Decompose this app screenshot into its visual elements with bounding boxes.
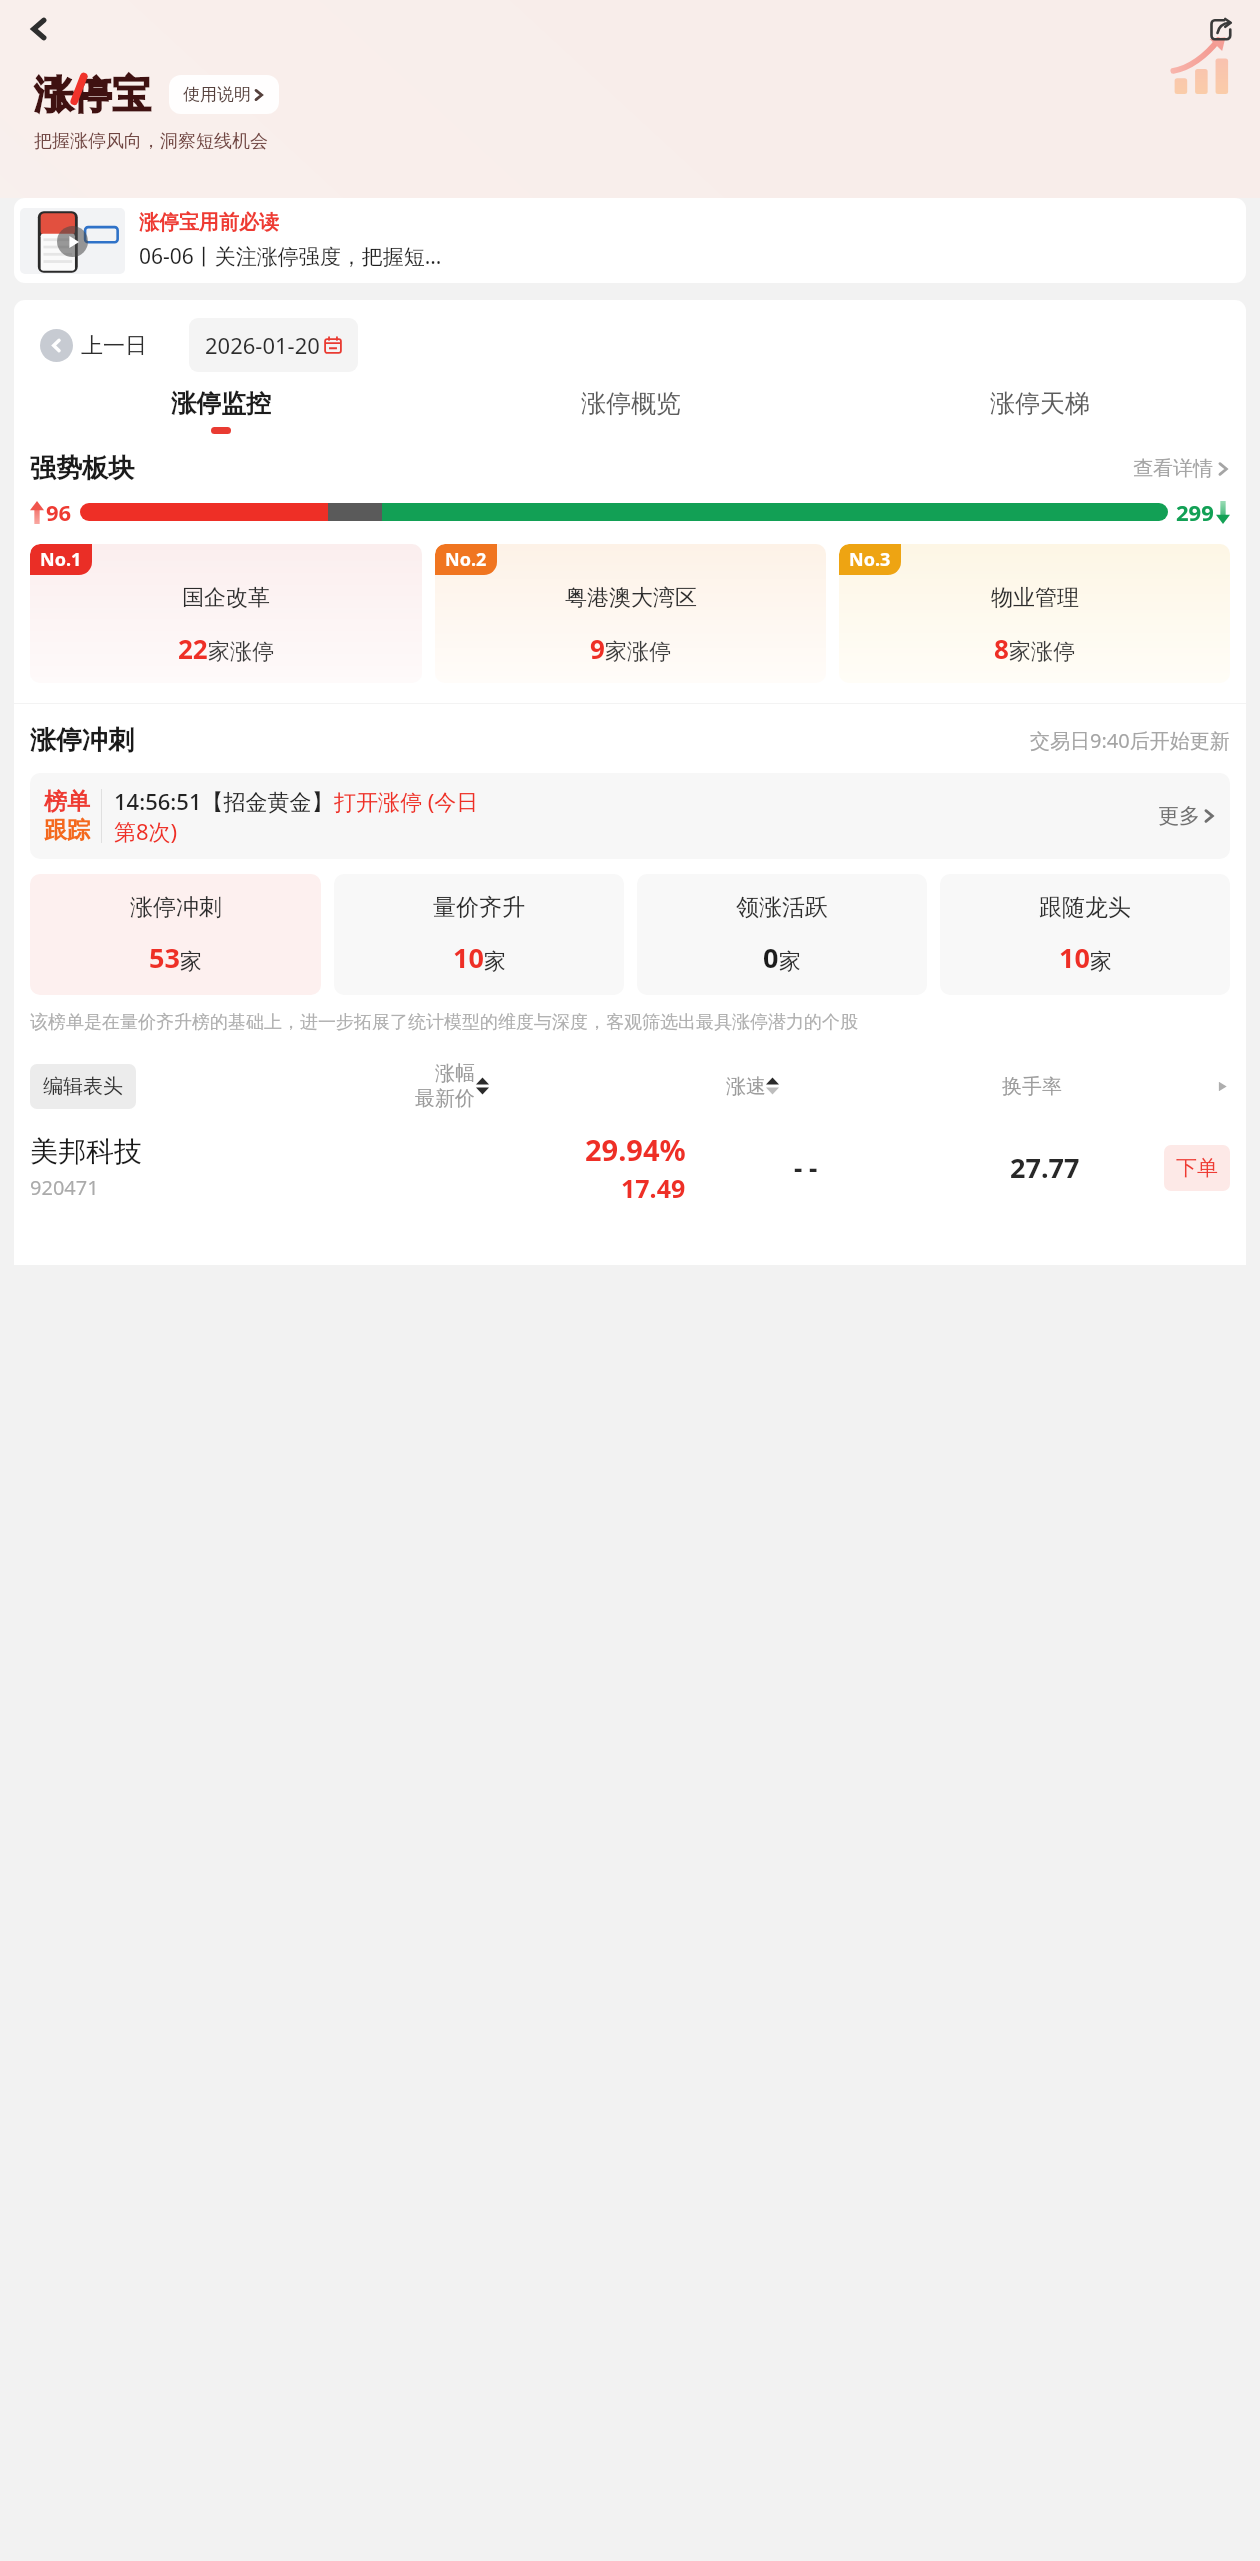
staticText: 29.94%: [585, 1130, 686, 1169]
staticText: No.1: [40, 547, 82, 572]
staticText: 该榜单是在量价齐升榜的基础上，进一步拓展了统计模型的维度与深度，客观筛选出最具涨…: [30, 1011, 858, 1034]
staticText: 96: [46, 497, 72, 527]
button[interactable]: 量价齐升: [334, 874, 624, 995]
staticText: 家涨停: [1009, 638, 1075, 666]
staticText: 涨停概览: [581, 388, 681, 419]
staticText: 0: [763, 939, 779, 976]
staticText: 编辑表头: [43, 1074, 123, 1099]
staticText: - -: [794, 1150, 818, 1185]
staticText: 9: [590, 631, 605, 666]
button[interactable]: 涨停天梯: [835, 388, 1244, 434]
button[interactable]: Back: [12, 2, 66, 56]
button[interactable]: 编辑表头: [30, 1064, 136, 1109]
button[interactable]: 美邦科技: [30, 1130, 1230, 1205]
button[interactable]: 涨停概览: [426, 388, 835, 434]
staticText: 下单: [1176, 1155, 1218, 1181]
staticText: 榜单: [44, 787, 90, 816]
staticText: 打开涨停 (今日: [334, 786, 479, 816]
staticText: 22: [178, 631, 208, 666]
button[interactable]: No.1: [30, 544, 422, 683]
staticText: 2026-01-20: [205, 330, 320, 360]
staticText: 涨停监控: [171, 388, 271, 419]
staticText: No.2: [445, 547, 487, 572]
staticText: 家涨停: [605, 638, 671, 666]
staticText: 家: [1090, 948, 1112, 976]
staticText: 物业管理: [991, 584, 1079, 612]
staticText: 06-06丨关注涨停强度，把握短…: [139, 242, 442, 271]
staticText: 粤港澳大湾区: [565, 584, 697, 612]
button[interactable]: 涨停冲刺: [30, 874, 321, 995]
button[interactable]: 领涨活跃: [637, 874, 927, 995]
button[interactable]: No.3: [839, 544, 1230, 683]
staticText: 920471: [30, 1174, 99, 1201]
staticText: 涨速: [726, 1074, 766, 1099]
button[interactable]: 跟随龙头: [940, 874, 1230, 995]
staticText: 17.49: [621, 1171, 686, 1205]
button[interactable]: 涨速: [726, 1071, 779, 1101]
staticText: 使用说明: [183, 84, 251, 105]
staticText: 家: [484, 948, 506, 976]
button[interactable]: 涨停宝用前必读: [14, 198, 1246, 283]
staticText: 10: [1059, 939, 1090, 976]
staticText: 上一日: [81, 332, 147, 360]
staticText: 强势板块: [30, 452, 134, 485]
staticText: 299: [1176, 497, 1214, 527]
staticText: 27.77: [1010, 1149, 1080, 1186]
button[interactable]: 查看详情: [1133, 456, 1230, 481]
staticText: 跟踪: [44, 816, 90, 845]
staticText: 家: [779, 948, 801, 976]
staticText: 国企改革: [182, 584, 270, 612]
button[interactable]: 交易日9:40后开始更新: [1030, 727, 1230, 754]
staticText: No.3: [849, 547, 891, 572]
staticText: 交易日9:40后开始更新: [1030, 727, 1230, 754]
staticText: 10: [453, 939, 484, 976]
button[interactable]: 榜单: [30, 773, 1230, 859]
staticText: 把握涨停风向，洞察短线机会: [34, 130, 268, 153]
staticText: 家涨停: [208, 638, 274, 666]
button[interactable]: 下单: [1164, 1145, 1230, 1191]
staticText: 跟随龙头: [1039, 893, 1131, 922]
staticText: 查看详情: [1133, 456, 1213, 481]
staticText: 14:56:51【招金黄金】: [114, 786, 334, 816]
staticText: 涨停宝用前必读: [139, 210, 279, 235]
button[interactable]: 2026-01-20: [189, 318, 358, 372]
button[interactable]: 涨停监控: [16, 388, 426, 434]
button[interactable]: No.2: [435, 544, 826, 683]
staticText: 涨停宝: [34, 70, 151, 119]
staticText: 量价齐升: [433, 893, 525, 922]
staticText: 家: [180, 948, 202, 976]
button[interactable]: Share: [1194, 2, 1248, 56]
staticText: 第8次): [114, 816, 178, 846]
staticText: 更多: [1158, 803, 1200, 829]
staticText: 涨停天梯: [990, 388, 1090, 419]
staticText: 涨停冲刺: [30, 724, 134, 757]
button[interactable]: 使用说明: [169, 75, 279, 114]
button[interactable]: 涨幅: [415, 1061, 489, 1111]
staticText: 涨幅: [435, 1061, 475, 1086]
other: More columns: [1215, 1079, 1230, 1094]
staticText: 涨停冲刺: [130, 893, 222, 922]
staticText: 最新价: [415, 1086, 475, 1111]
button[interactable]: 上一日: [40, 329, 147, 362]
staticText: 8: [994, 631, 1009, 666]
staticText: 53: [149, 939, 180, 976]
staticText: 换手率: [1002, 1074, 1062, 1099]
staticText: 美邦科技: [30, 1134, 142, 1169]
staticText: 领涨活跃: [736, 893, 828, 922]
